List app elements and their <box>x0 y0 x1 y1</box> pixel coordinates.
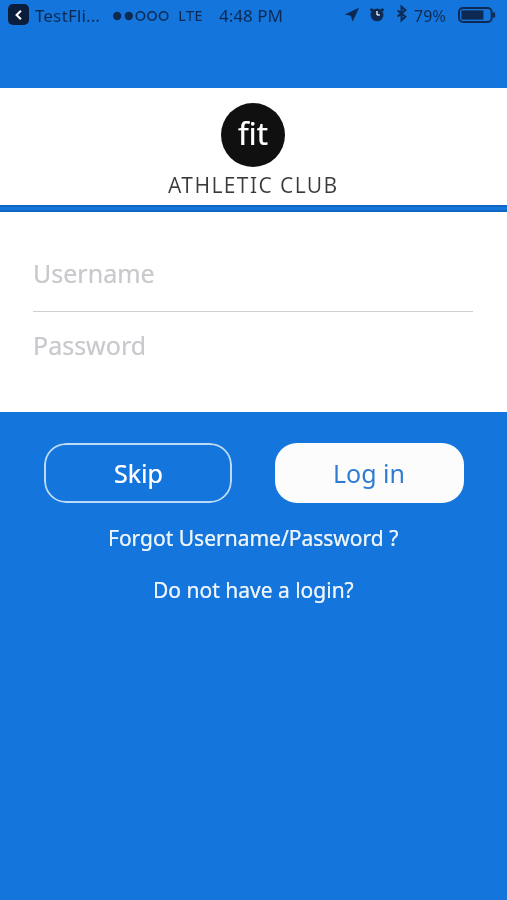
staticText: Skip <box>114 456 163 490</box>
staticText: LTE <box>178 5 203 25</box>
button[interactable]: Forgot Username/Password ? <box>0 521 507 555</box>
staticText: Password <box>33 328 147 362</box>
button[interactable]: Back to TestFlight <box>8 4 29 25</box>
button[interactable]: Log in <box>275 443 464 503</box>
staticText: 4:48 PM <box>219 4 284 27</box>
staticText: 79% <box>414 5 446 27</box>
staticText: TestFli... <box>35 4 100 27</box>
staticText: Username <box>33 256 155 290</box>
button[interactable]: Password <box>0 312 507 382</box>
staticText: ATHLETIC CLUB <box>168 171 339 200</box>
button[interactable]: Do not have a login? <box>0 573 507 607</box>
staticText: Do not have a login? <box>153 576 354 605</box>
staticText: Log in <box>333 456 406 490</box>
button[interactable]: Username <box>0 240 507 311</box>
staticText: fit <box>238 112 268 154</box>
staticText: Forgot Username/Password ? <box>108 524 399 553</box>
button[interactable]: Skip <box>44 443 232 503</box>
